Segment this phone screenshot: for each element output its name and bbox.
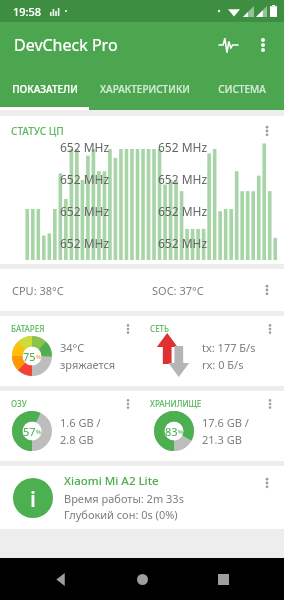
staticText: БАТАРЕЯ (11, 323, 45, 334)
button[interactable]: ОЗУ (0, 391, 284, 461)
button[interactable]: Recents (203, 559, 243, 599)
button[interactable]: ОЗУ (0, 391, 142, 461)
staticText: 83 (165, 424, 178, 439)
staticText: ХРАНИЛИЩЕ (150, 398, 202, 409)
staticText: 652 MHz (60, 203, 110, 219)
staticText: % (36, 428, 41, 436)
staticText: i (30, 483, 36, 513)
button[interactable]: Back (41, 559, 81, 599)
staticText: 652 MHz (158, 235, 208, 251)
staticText: 652 MHz (158, 139, 208, 155)
button[interactable]: Battery options (116, 317, 140, 341)
button[interactable]: БАТАРЕЯ (0, 316, 284, 386)
staticText: 75 (23, 349, 36, 364)
staticText: 17.6 GB / (202, 415, 249, 430)
button[interactable]: CPU: 38°C (0, 269, 284, 311)
button[interactable]: Home (122, 559, 162, 599)
button[interactable]: ХАРАКТЕРИСТИКИ (89, 68, 200, 110)
staticText: ПОКАЗАТЕЛИ (12, 82, 78, 96)
staticText: СЕТЬ (150, 323, 170, 334)
button[interactable]: СИСТЕМА (200, 68, 284, 110)
button[interactable]: Temperature options (254, 277, 280, 303)
button[interactable]: Device options (254, 470, 280, 496)
staticText: % (178, 428, 183, 436)
staticText: 19:58 (13, 4, 42, 19)
staticText: 652 MHz (60, 235, 110, 251)
button[interactable]: СЕТЬ (142, 316, 284, 386)
button[interactable]: i (0, 466, 284, 529)
staticText: DevCheck Pro (14, 34, 118, 56)
button[interactable]: СТАТУС ЦП (0, 116, 284, 264)
staticText: % (36, 353, 41, 361)
staticText: CPU: 38°C (12, 283, 64, 298)
staticText: 652 MHz (158, 203, 208, 219)
staticText: tx: 177 Б/s (202, 340, 256, 355)
button[interactable]: Monitor (210, 27, 246, 63)
button[interactable]: CPU options (254, 118, 280, 144)
button[interactable]: RAM options (116, 392, 140, 416)
staticText: 652 MHz (60, 171, 110, 187)
staticText: 652 MHz (158, 171, 208, 187)
staticText: 21.3 GB (202, 432, 242, 447)
staticText: зряжается (60, 357, 116, 372)
staticText: 34°C (60, 340, 85, 355)
button[interactable]: БАТАРЕЯ (0, 316, 142, 386)
staticText: СИСТЕМА (218, 82, 266, 96)
button[interactable]: Network options (258, 317, 282, 341)
staticText: 57 (23, 424, 36, 439)
staticText: rx: 0 Б/s (202, 357, 244, 372)
staticText: 652 MHz (60, 139, 110, 155)
staticText: Глубокий сон: 0s (0%) (64, 507, 178, 522)
staticText: Время работы: 2m 33s (64, 491, 184, 506)
button[interactable]: ПОКАЗАТЕЛИ (0, 68, 89, 110)
button[interactable]: More options (246, 28, 280, 62)
staticText: ОЗУ (11, 398, 27, 409)
staticText: ХАРАКТЕРИСТИКИ (100, 82, 190, 96)
staticText: 1.6 GB / (60, 415, 101, 430)
staticText: 2.8 GB (60, 432, 94, 447)
button[interactable]: ХРАНИЛИЩЕ (142, 391, 284, 461)
staticText: SOC: 37°C (152, 283, 204, 298)
staticText: Xiaomi Mi A2 Lite (64, 473, 159, 489)
staticText: СТАТУС ЦП (11, 124, 64, 138)
button[interactable]: Storage options (258, 392, 282, 416)
